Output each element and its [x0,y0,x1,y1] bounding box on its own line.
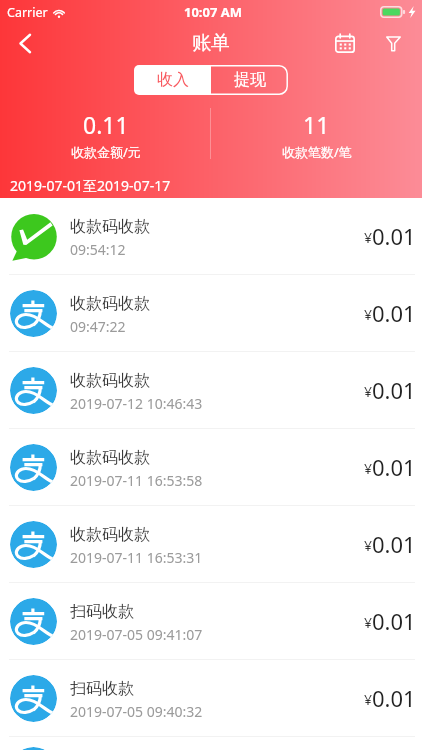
staticText: ¥0.01 [364,529,416,559]
button[interactable]: 收入 [134,65,211,95]
button[interactable]: 收款码收款 [0,198,422,275]
button[interactable]: 提现 [211,65,288,95]
button[interactable]: Calendar [330,28,360,58]
button[interactable]: Filter [378,28,408,58]
button[interactable]: 扫码收款 [0,660,422,737]
staticText: 收款码收款 [70,448,150,468]
staticText: 扫码收款 [70,679,134,699]
staticText: 收款码收款 [70,525,150,545]
staticText: 2019-07-01至2019-07-17 [10,176,171,195]
staticText: 09:54:12 [70,240,126,259]
staticText: ¥0.01 [364,606,416,636]
staticText: 2019-07-05 09:40:32 [70,702,203,721]
staticText: 2019-07-12 10:46:43 [70,394,203,413]
button[interactable]: 扫码收款 [0,737,422,750]
staticText: 09:47:22 [70,317,126,336]
staticText: 提现 [234,70,266,90]
staticText: 收入 [157,70,189,90]
staticText: ¥0.01 [364,221,416,251]
button[interactable]: 收款码收款 [0,506,422,583]
staticText: 收款码收款 [70,217,150,237]
staticText: 扫码收款 [70,602,134,622]
button[interactable]: 收款码收款 [0,275,422,352]
staticText: 收款金额/元 [71,143,141,161]
button[interactable]: 收款码收款 [0,429,422,506]
staticText: 11 [303,109,330,140]
staticText: 2019-07-11 16:53:58 [70,471,203,490]
staticText: ¥0.01 [364,375,416,405]
staticText: ¥0.01 [364,452,416,482]
staticText: ¥0.01 [364,683,416,713]
staticText: 收款码收款 [70,371,150,391]
button[interactable]: 扫码收款 [0,583,422,660]
button[interactable]: Back [11,29,39,57]
staticText: 收款码收款 [70,294,150,314]
staticText: 0.11 [83,109,129,140]
staticText: 收款笔数/笔 [282,143,352,161]
staticText: Carrier [7,4,48,21]
button[interactable]: 收款码收款 [0,352,422,429]
staticText: ¥0.01 [364,298,416,328]
staticText: 2019-07-05 09:41:07 [70,625,203,644]
staticText: 账单 [192,31,230,55]
staticText: 2019-07-11 16:53:31 [70,548,203,567]
staticText: 10:07 AM [184,3,243,21]
